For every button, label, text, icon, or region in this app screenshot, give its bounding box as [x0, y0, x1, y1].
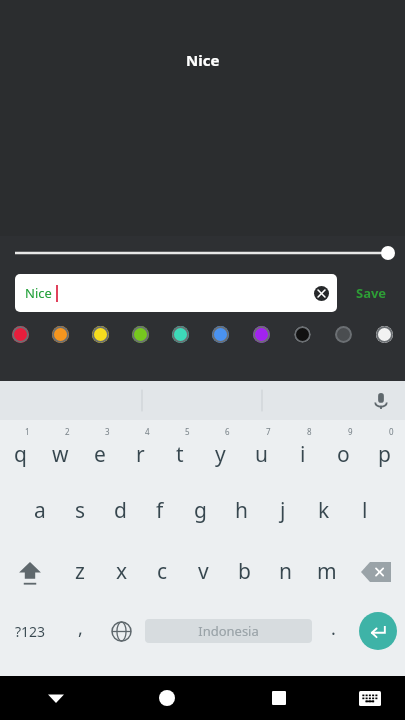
- button[interactable]: s: [60, 480, 100, 541]
- staticText: f: [156, 496, 164, 525]
- button[interactable]: Colour 9: [323, 316, 364, 352]
- button[interactable]: Nice: [15, 274, 337, 312]
- staticText: z: [75, 557, 85, 586]
- staticText: 7: [266, 426, 271, 437]
- staticText: l: [362, 496, 368, 525]
- staticText: ?123: [15, 622, 46, 641]
- button[interactable]: Colour 10: [364, 316, 405, 352]
- button[interactable]: Colour 6: [200, 316, 241, 352]
- button[interactable]: Colour 4: [120, 316, 160, 352]
- button[interactable]: n: [265, 541, 306, 602]
- button[interactable]: Colour 3: [80, 316, 120, 352]
- button[interactable]: Recent apps: [223, 676, 335, 720]
- button[interactable]: ?123: [0, 602, 60, 660]
- staticText: k: [318, 496, 330, 525]
- button[interactable]: Home: [111, 676, 223, 720]
- button[interactable]: 2: [40, 420, 80, 480]
- staticText: n: [279, 557, 292, 586]
- button[interactable]: 3: [80, 420, 120, 480]
- button[interactable]: x: [101, 541, 142, 602]
- button[interactable]: 8: [282, 420, 323, 480]
- staticText: a: [34, 496, 46, 525]
- staticText: x: [116, 557, 128, 586]
- staticText: Save: [356, 284, 387, 302]
- button[interactable]: m: [306, 541, 347, 602]
- staticText: t: [176, 440, 184, 469]
- button[interactable]: z: [59, 541, 101, 602]
- staticText: 2: [65, 426, 70, 437]
- button[interactable]: Hide keyboard: [0, 676, 111, 720]
- staticText: Nice: [25, 284, 52, 302]
- button[interactable]: Colour 8: [282, 316, 323, 352]
- button[interactable]: 1: [0, 420, 40, 480]
- staticText: c: [157, 557, 168, 586]
- staticText: h: [235, 496, 248, 525]
- staticText: g: [194, 496, 207, 525]
- button[interactable]: k: [303, 480, 344, 541]
- button[interactable]: j: [262, 480, 303, 541]
- button[interactable]: 0: [364, 420, 405, 480]
- button[interactable]: 7: [241, 420, 282, 480]
- staticText: 8: [307, 426, 312, 437]
- staticText: p: [378, 440, 391, 469]
- button[interactable]: a: [20, 480, 60, 541]
- button[interactable]: Colour 7: [241, 316, 282, 352]
- button[interactable]: Colour 5: [160, 316, 200, 352]
- button[interactable]: g: [180, 480, 221, 541]
- staticText: y: [215, 440, 226, 469]
- staticText: o: [337, 440, 350, 469]
- staticText: .: [331, 616, 336, 641]
- staticText: 5: [185, 426, 190, 437]
- button[interactable]: Backspace: [347, 541, 405, 602]
- staticText: 3: [105, 426, 110, 437]
- staticText: 9: [348, 426, 353, 437]
- button[interactable]: c: [142, 541, 183, 602]
- staticText: Nice: [186, 50, 220, 70]
- staticText: Indonesia: [198, 622, 259, 640]
- button[interactable]: 6: [200, 420, 241, 480]
- button[interactable]: Indonesia: [145, 619, 312, 643]
- staticText: b: [238, 557, 251, 586]
- staticText: i: [300, 440, 306, 469]
- button[interactable]: Clear text: [308, 280, 334, 306]
- button[interactable]: Change language: [100, 602, 142, 660]
- button[interactable]: d: [100, 480, 140, 541]
- button[interactable]: 4: [120, 420, 160, 480]
- button[interactable]: Keyboard indicator: [335, 676, 405, 720]
- staticText: 6: [225, 426, 230, 437]
- button[interactable]: .: [315, 602, 351, 660]
- button[interactable]: Enter: [351, 602, 405, 660]
- staticText: 0: [389, 426, 394, 437]
- button[interactable]: b: [224, 541, 265, 602]
- staticText: v: [198, 557, 209, 586]
- button[interactable]: Voice input: [365, 385, 397, 417]
- staticText: w: [52, 440, 69, 469]
- staticText: j: [280, 496, 286, 525]
- staticText: m: [317, 557, 337, 586]
- button[interactable]: Save: [337, 274, 405, 312]
- button[interactable]: 9: [323, 420, 364, 480]
- button[interactable]: Colour 2: [40, 316, 80, 352]
- button[interactable]: [0, 236, 405, 270]
- staticText: r: [136, 440, 145, 469]
- staticText: d: [114, 496, 127, 525]
- button[interactable]: v: [183, 541, 224, 602]
- button[interactable]: l: [344, 480, 385, 541]
- staticText: u: [255, 440, 268, 469]
- button[interactable]: Colour 1: [0, 316, 40, 352]
- staticText: q: [14, 440, 27, 469]
- staticText: s: [75, 496, 86, 525]
- staticText: 1: [25, 426, 30, 437]
- button[interactable]: ,: [60, 602, 100, 660]
- button[interactable]: h: [221, 480, 262, 541]
- staticText: 4: [145, 426, 150, 437]
- button[interactable]: f: [140, 480, 180, 541]
- button[interactable]: Shift: [0, 541, 59, 602]
- button[interactable]: 5: [160, 420, 200, 480]
- staticText: e: [94, 440, 106, 469]
- staticText: ,: [78, 616, 83, 641]
